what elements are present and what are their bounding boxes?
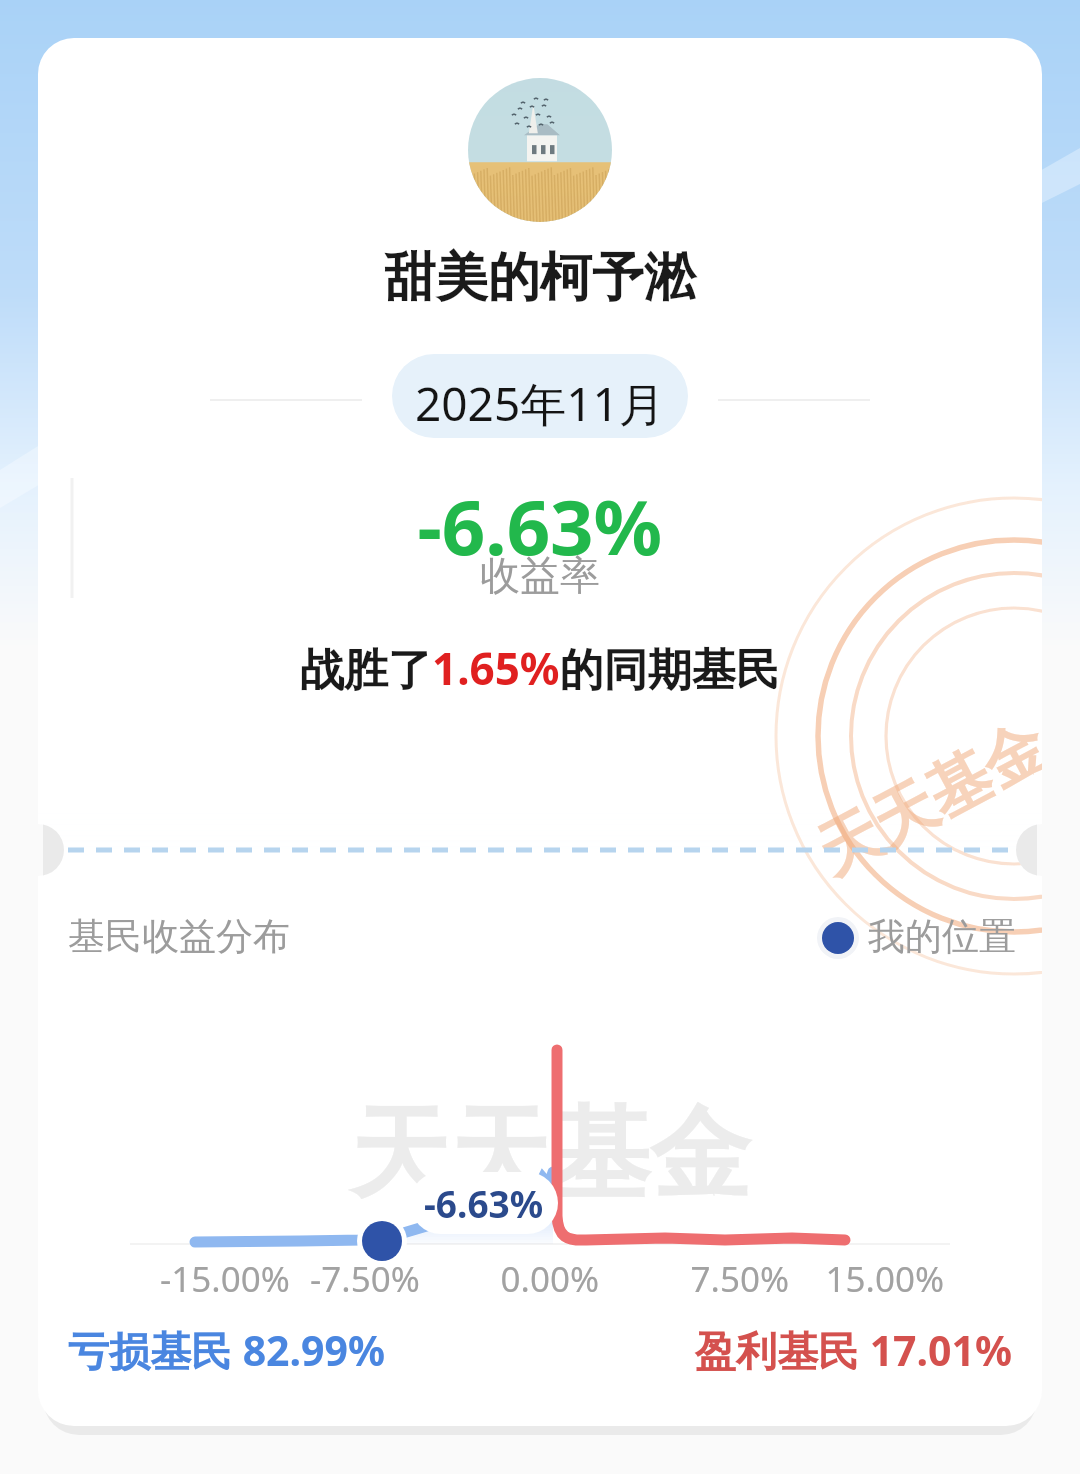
- button[interactable]: Monthly fund return share card: [0, 0, 1080, 1474]
